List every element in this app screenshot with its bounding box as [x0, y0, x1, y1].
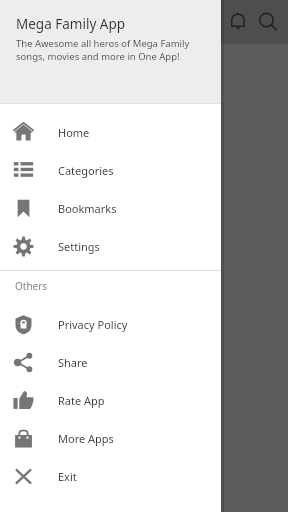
- staticText: Settings: [58, 239, 100, 254]
- staticText: Exit: [58, 469, 77, 484]
- staticText: Others: [15, 279, 48, 293]
- button[interactable]: Home: [0, 113, 221, 151]
- button[interactable]: Categories: [0, 151, 221, 189]
- staticText: Privacy Policy: [58, 317, 128, 332]
- staticText: The Awesome all heros of Mega Family son…: [16, 37, 209, 63]
- staticText: Share: [58, 355, 88, 370]
- button[interactable]: Search: [255, 9, 281, 35]
- button[interactable]: Bookmarks: [0, 189, 221, 227]
- button[interactable]: Exit: [0, 457, 221, 495]
- staticText: Bookmarks: [58, 201, 117, 216]
- button[interactable]: Privacy Policy: [0, 305, 221, 343]
- staticText: Categories: [58, 163, 114, 178]
- button[interactable]: More Apps: [0, 419, 221, 457]
- staticText: More Apps: [58, 431, 114, 446]
- button[interactable]: Rate App: [0, 381, 221, 419]
- staticText: Home: [58, 125, 90, 140]
- staticText: Rate App: [58, 393, 105, 408]
- button[interactable]: Share: [0, 343, 221, 381]
- staticText: Mega Family App: [16, 15, 126, 33]
- button[interactable]: Settings: [0, 227, 221, 265]
- button[interactable]: Notifications: [225, 9, 251, 35]
